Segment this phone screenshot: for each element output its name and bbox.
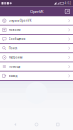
staticText: Выход [9, 74, 18, 78]
staticText: Настройки [9, 56, 23, 59]
staticText: Новости [9, 28, 21, 32]
button[interactable]: Сообщения [0, 35, 73, 44]
staticText: OpenVK [30, 9, 43, 14]
button[interactable]: Помощь [0, 62, 73, 72]
button[interactable]: Новости [0, 26, 73, 35]
button[interactable]: Recents [52, 119, 64, 129]
button[interactable]: Back [9, 119, 21, 129]
button[interactable]: Home [30, 119, 42, 129]
staticText: Поиск [9, 46, 17, 50]
button[interactable]: Настройки [0, 53, 73, 62]
button[interactable]: Open in browser [63, 7, 71, 16]
button[interactable]: Поиск [0, 44, 73, 53]
staticText: Помощь [9, 65, 20, 68]
button[interactable]: Открыть OpenVK [0, 16, 73, 26]
staticText: 4:02 [64, 1, 71, 5]
staticText: Открыть OpenVK [9, 19, 32, 22]
button[interactable]: Выход [0, 72, 73, 81]
staticText: Сообщения [9, 37, 26, 41]
